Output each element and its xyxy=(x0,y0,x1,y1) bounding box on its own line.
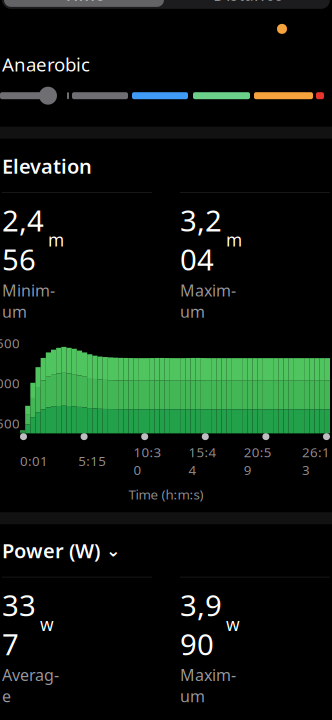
staticText: 10:30 xyxy=(133,443,161,478)
staticText: w xyxy=(40,613,54,636)
staticText: 3,990 xyxy=(180,585,222,663)
staticText: Power (W) xyxy=(2,537,100,564)
staticText: ⌄ xyxy=(106,541,121,560)
staticText: Maximum xyxy=(180,280,236,322)
staticText: Time (h:m:s) xyxy=(128,486,203,503)
button[interactable]: Power (W) xyxy=(0,524,332,564)
staticText: 15:44 xyxy=(189,443,217,478)
staticText: 337 xyxy=(2,585,36,663)
staticText: 0:01 xyxy=(20,452,48,470)
staticText: Elevation xyxy=(2,153,92,179)
staticText: Distance xyxy=(213,0,283,5)
staticText: 5:15 xyxy=(78,452,106,470)
staticText: 2500 xyxy=(0,414,20,432)
button[interactable]: Distance xyxy=(166,0,330,9)
staticText: Anaerobic xyxy=(2,52,90,77)
staticText: 3,204 xyxy=(180,201,222,279)
staticText: 20:59 xyxy=(244,443,272,478)
staticText: m xyxy=(48,228,64,251)
staticText: 2,456 xyxy=(2,201,44,279)
staticText: Time xyxy=(63,0,104,5)
staticText: Maximum xyxy=(180,664,236,707)
staticText: Average xyxy=(2,664,59,707)
staticText: 26:13 xyxy=(302,443,330,478)
staticText: 3500 xyxy=(0,334,20,352)
staticText: w xyxy=(226,613,240,636)
staticText: m xyxy=(226,228,242,251)
staticText: Minimum xyxy=(2,280,55,322)
staticText: 3000 xyxy=(0,374,20,392)
button[interactable]: Time xyxy=(2,0,166,9)
